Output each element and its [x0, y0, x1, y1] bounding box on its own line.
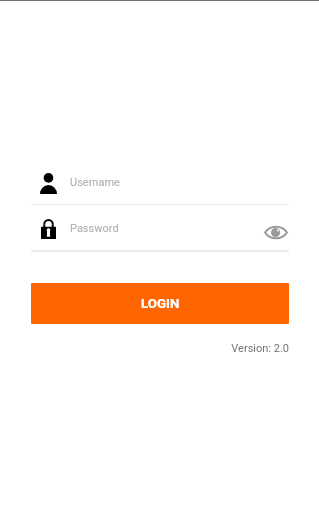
button[interactable]: Show password: [260, 219, 292, 245]
button[interactable]: Username: [31, 161, 288, 204]
button[interactable]: Password: [31, 205, 288, 251]
staticText: Version: 2.0: [31, 342, 289, 355]
staticText: Password: [70, 222, 119, 235]
staticText: LOGIN: [141, 296, 180, 312]
staticText: Username: [70, 176, 120, 189]
button[interactable]: LOGIN: [31, 283, 289, 324]
